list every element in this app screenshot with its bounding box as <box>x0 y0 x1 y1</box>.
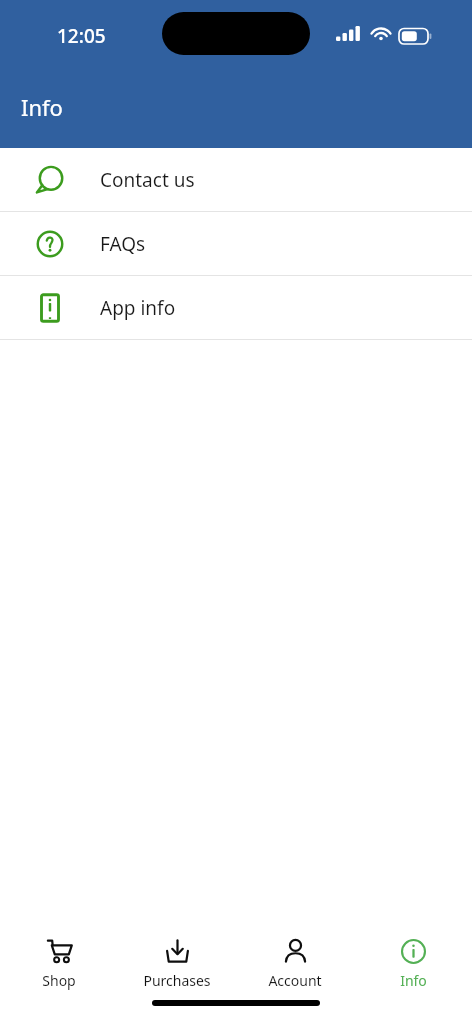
button[interactable]: Account <box>236 924 354 1000</box>
button[interactable]: Info <box>354 924 472 1000</box>
button[interactable]: Purchases <box>118 924 236 1000</box>
staticText: Account <box>268 971 322 990</box>
staticText: 12:05 <box>57 23 106 49</box>
button[interactable]: FAQs <box>0 212 472 275</box>
staticText: App info <box>100 295 176 321</box>
staticText: Info <box>21 92 63 122</box>
staticText: Purchases <box>143 971 211 990</box>
staticText: Contact us <box>100 167 195 193</box>
button[interactable]: App info <box>0 276 472 339</box>
staticText: Shop <box>42 971 76 990</box>
button[interactable]: Contact us <box>0 148 472 211</box>
button[interactable]: Shop <box>0 924 118 1000</box>
staticText: FAQs <box>100 231 146 257</box>
staticText: Info <box>400 971 427 990</box>
